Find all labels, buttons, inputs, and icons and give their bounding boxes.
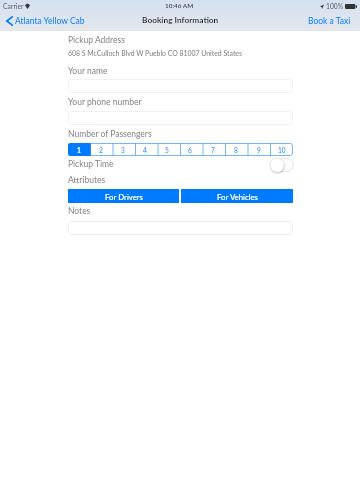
button[interactable]: 9 — [247, 143, 270, 156]
button[interactable]: For Drivers — [68, 189, 179, 203]
staticText: 5 — [165, 146, 169, 154]
button[interactable]: 4 — [134, 143, 156, 156]
button[interactable]: 6 — [178, 143, 201, 156]
staticText: 1 — [77, 146, 81, 154]
staticText: Notes — [68, 206, 91, 216]
button[interactable]: Book a Taxi — [299, 12, 360, 30]
button[interactable]: 8 — [224, 143, 247, 156]
staticText: Atlanta Yellow Cab — [15, 16, 85, 26]
staticText: 2 — [99, 146, 103, 154]
button[interactable] — [68, 79, 293, 93]
button[interactable] — [68, 111, 293, 125]
staticText: 8 — [234, 146, 238, 154]
button[interactable]: For Vehicles — [181, 189, 293, 203]
button[interactable]: 3 — [112, 143, 134, 156]
staticText: Your phone number — [68, 97, 142, 107]
staticText: Book a Taxi — [308, 16, 351, 26]
staticText: Your name — [68, 66, 108, 76]
staticText: 7 — [211, 146, 215, 154]
button[interactable]: 1 — [68, 143, 90, 156]
staticText: Attributes — [68, 175, 106, 185]
staticText: 6 — [188, 146, 192, 154]
staticText: For Vehicles — [217, 192, 258, 201]
button[interactable]: 10 — [270, 143, 293, 156]
button[interactable]: 2 — [90, 143, 112, 156]
staticText: 10 — [278, 146, 286, 154]
button[interactable]: 7 — [201, 143, 224, 156]
staticText: 4 — [143, 146, 147, 154]
button[interactable] — [68, 221, 293, 235]
staticText: Carrier — [3, 2, 24, 10]
button[interactable]: 5 — [156, 143, 178, 156]
staticText: Pickup Address — [68, 35, 125, 45]
staticText: Pickup Time — [68, 159, 114, 169]
staticText: Booking Information — [142, 15, 219, 25]
staticText: 608 S McCulloch Blvd W Pueblo CO 81007 U… — [68, 49, 242, 57]
button[interactable]: Atlanta Yellow Cab — [0, 12, 91, 30]
staticText: Number of Passengers — [68, 129, 152, 139]
staticText: 3 — [121, 146, 125, 154]
button[interactable]: Toggle pickup time — [270, 158, 294, 172]
staticText: For Drivers — [105, 192, 143, 201]
staticText: 9 — [257, 146, 261, 154]
staticText: 10:46 AM — [165, 2, 194, 10]
staticText: 100% — [326, 2, 343, 10]
